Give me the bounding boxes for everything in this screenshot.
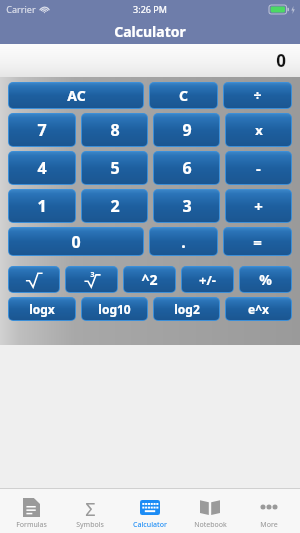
staticText: e^x xyxy=(248,301,269,317)
button[interactable]: 4 xyxy=(9,152,75,184)
staticText: 8 xyxy=(110,119,120,141)
staticText: Calculator xyxy=(133,520,167,530)
staticText: 6 xyxy=(182,157,192,179)
other: Calculator xyxy=(140,500,160,515)
button[interactable]: Calculator xyxy=(121,494,179,532)
button[interactable]: + xyxy=(226,190,291,222)
staticText: More xyxy=(260,520,278,530)
staticText: 9 xyxy=(182,119,192,141)
button[interactable]: . xyxy=(150,228,217,255)
staticText: 7 xyxy=(37,119,47,141)
staticText: = xyxy=(253,232,262,252)
button[interactable]: ^2 xyxy=(124,267,175,292)
staticText: Carrier xyxy=(6,3,36,15)
staticText: 1 xyxy=(37,195,47,217)
staticText: log10 xyxy=(98,301,131,317)
staticText: Notebook xyxy=(194,520,227,530)
staticText: 0 xyxy=(71,231,81,253)
button[interactable]: 8 xyxy=(82,114,147,146)
staticText: . xyxy=(181,231,186,253)
staticText: + xyxy=(254,196,263,216)
staticText: C xyxy=(179,86,188,105)
button[interactable]: log2 xyxy=(154,298,219,320)
staticText: 3:26 PM xyxy=(133,3,167,15)
other: Symbols xyxy=(80,497,100,517)
staticText: 5 xyxy=(110,157,120,179)
button[interactable]: C xyxy=(150,83,217,108)
staticText: ÷ xyxy=(253,86,262,105)
staticText: 3 xyxy=(90,270,95,280)
staticText: - xyxy=(256,158,261,178)
button[interactable]: Notebook xyxy=(181,494,239,532)
button[interactable]: = xyxy=(224,228,291,255)
staticText: +/- xyxy=(199,271,216,289)
button[interactable]: x xyxy=(226,114,291,146)
button[interactable]: 7 xyxy=(9,114,75,146)
other: More xyxy=(259,504,279,510)
button[interactable]: 3 xyxy=(66,267,117,292)
staticText: x xyxy=(255,121,263,139)
button[interactable]: e^x xyxy=(226,298,291,320)
button[interactable]: log10 xyxy=(82,298,147,320)
staticText: 4 xyxy=(37,157,47,179)
staticText: Symbols xyxy=(76,520,104,530)
other: Notebook xyxy=(200,499,220,515)
staticText: 3 xyxy=(182,195,192,217)
staticText: Formulas xyxy=(16,520,47,530)
button[interactable]: 3 xyxy=(154,190,219,222)
staticText: log2 xyxy=(174,301,200,317)
button[interactable]: % xyxy=(240,267,291,292)
button[interactable]: Formulas xyxy=(2,494,60,532)
button[interactable]: +/- xyxy=(182,267,233,292)
other: Formulas xyxy=(23,498,40,517)
button[interactable]: 6 xyxy=(154,152,219,184)
button[interactable]: 2 xyxy=(82,190,147,222)
button[interactable]: More xyxy=(240,494,298,532)
button[interactable]: logx xyxy=(9,298,75,320)
staticText: logx xyxy=(29,301,55,317)
button[interactable]: 0 xyxy=(9,228,143,255)
button[interactable]: - xyxy=(226,152,291,184)
button[interactable]: 1 xyxy=(9,190,75,222)
staticText: % xyxy=(259,270,272,289)
staticText: 0 xyxy=(276,49,286,72)
staticText: ^2 xyxy=(141,270,158,289)
button[interactable]: Symbols xyxy=(61,494,119,532)
staticText: Σ xyxy=(85,497,96,517)
staticText: Calculator xyxy=(114,22,186,41)
button[interactable]: 5 xyxy=(82,152,147,184)
button[interactable]: 9 xyxy=(154,114,219,146)
staticText: 2 xyxy=(110,195,120,217)
button[interactable]: AC xyxy=(9,83,143,108)
button[interactable]: ÷ xyxy=(224,83,291,108)
button[interactable] xyxy=(9,267,59,292)
staticText: AC xyxy=(67,86,86,105)
